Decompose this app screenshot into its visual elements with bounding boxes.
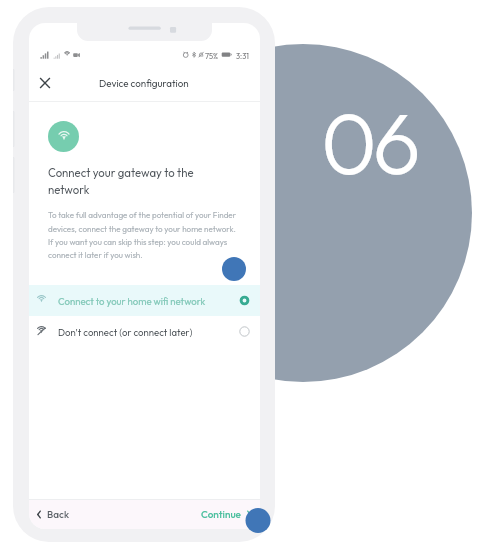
button[interactable]: Don't connect (or connect later) bbox=[29, 316, 260, 347]
staticText: Connect to your home wifi network bbox=[58, 295, 206, 307]
button[interactable]: Continue bbox=[201, 508, 254, 521]
staticText: Connect your gateway to the network bbox=[48, 166, 194, 197]
staticText: To take full advantage of the potential … bbox=[48, 210, 240, 260]
button[interactable]: Connect to your home wifi network bbox=[29, 285, 260, 316]
staticText: 06 bbox=[321, 89, 417, 196]
staticText: Continue bbox=[201, 508, 241, 521]
staticText: Back bbox=[47, 508, 69, 521]
staticText: Don't connect (or connect later) bbox=[58, 326, 193, 338]
staticText: 75% bbox=[205, 51, 219, 61]
button[interactable]: Back bbox=[34, 508, 69, 521]
staticText: Device configuration bbox=[99, 77, 189, 89]
staticText: 3:31 bbox=[236, 51, 249, 61]
button[interactable]: Close bbox=[36, 74, 54, 92]
